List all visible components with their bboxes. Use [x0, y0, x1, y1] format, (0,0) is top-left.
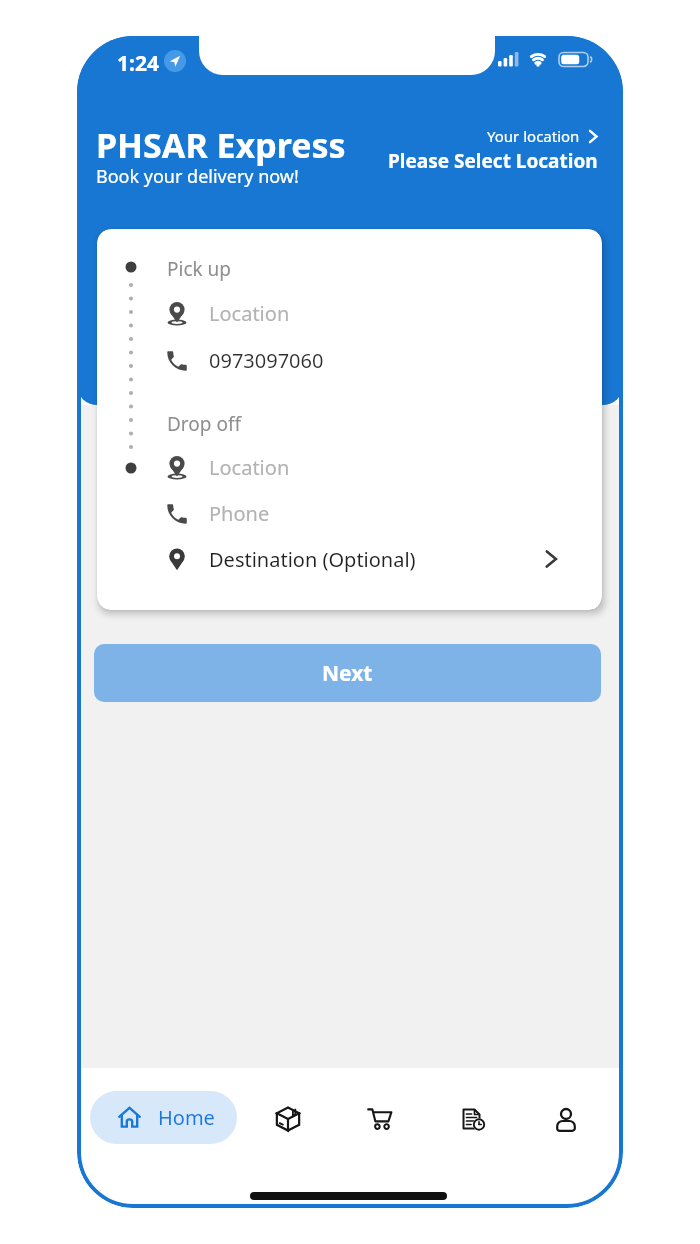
staticText: Book your delivery now!	[96, 164, 299, 189]
staticText: Location	[209, 300, 290, 327]
button[interactable]: Location	[164, 454, 584, 481]
staticText: PHSAR Express	[96, 122, 346, 168]
button[interactable]: Destination (Optional)	[164, 546, 584, 573]
staticText: Pick up	[167, 256, 232, 282]
staticText: Phone	[209, 500, 270, 527]
button[interactable]	[357, 1096, 405, 1144]
button[interactable]: Your location	[298, 126, 598, 174]
staticText: 1:24	[117, 49, 159, 78]
staticText: Location	[209, 454, 290, 481]
staticText: Please Select Location	[388, 148, 598, 174]
staticText: Destination (Optional)	[209, 546, 416, 573]
staticText: Drop off	[167, 411, 242, 437]
button[interactable]	[449, 1095, 497, 1143]
button[interactable]: Home	[90, 1091, 237, 1144]
button[interactable]: Location	[164, 300, 584, 327]
button[interactable]	[264, 1095, 312, 1143]
button[interactable]: Phone	[164, 500, 584, 527]
staticText: Next	[322, 659, 373, 688]
staticText: 0973097060	[209, 347, 324, 374]
staticText: Home	[158, 1104, 215, 1131]
button[interactable]: Next	[94, 644, 601, 702]
button[interactable]	[542, 1096, 590, 1144]
staticText: Your location	[487, 126, 580, 146]
button[interactable]: 0973097060	[164, 347, 584, 374]
